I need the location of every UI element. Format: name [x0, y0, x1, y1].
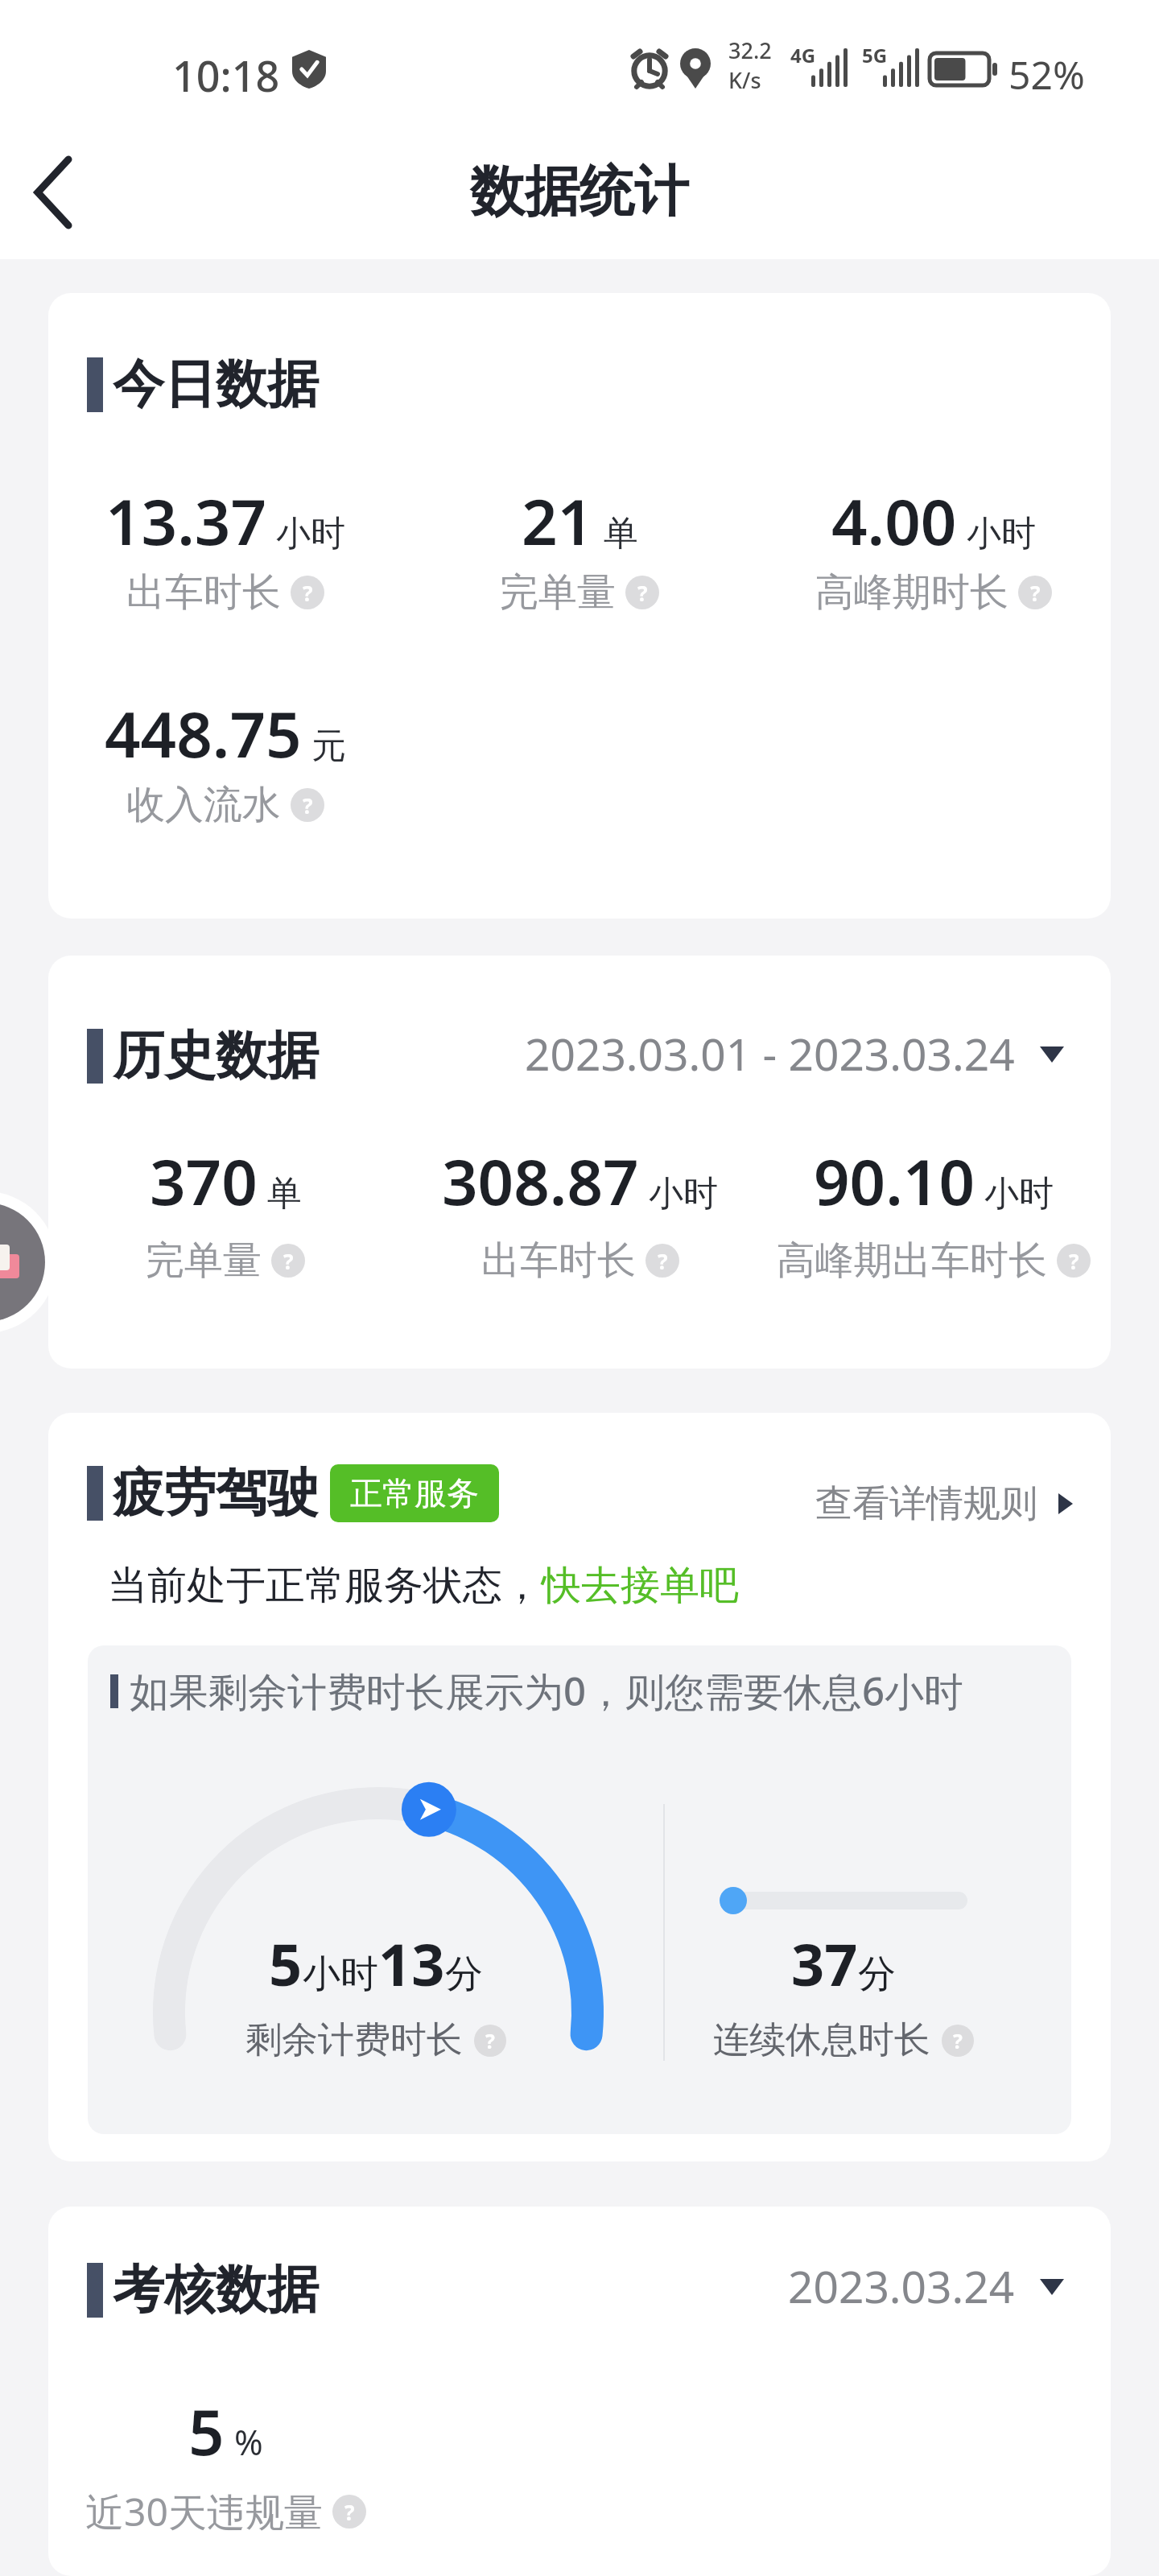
button[interactable]: 2023.03.01 - 2023.03.24: [525, 1023, 1064, 1084]
staticText: 单: [267, 1172, 302, 1216]
staticText: 小时: [303, 1951, 378, 1998]
staticText: 小时: [276, 512, 345, 555]
staticText: 小时: [967, 512, 1036, 555]
staticText: 4G: [790, 42, 816, 68]
staticText: 数据统计: [470, 158, 689, 227]
staticText: 308.87: [442, 1138, 639, 1224]
button[interactable]: 查看详情规则: [815, 1480, 1073, 1527]
staticText: ?: [658, 1247, 668, 1275]
staticText: 4.00: [831, 478, 957, 563]
staticText: 高峰期出车时长: [777, 1236, 1047, 1285]
staticText: ?: [637, 579, 648, 607]
staticText: 448.75: [105, 691, 302, 776]
staticText: ?: [1069, 1247, 1079, 1275]
staticText: 21: [522, 478, 594, 563]
staticText: 历史数据: [113, 1023, 319, 1088]
staticText: 正常服务: [350, 1473, 479, 1513]
staticText: 元: [311, 724, 346, 768]
staticText: 高峰期时长: [815, 568, 1008, 617]
staticText: 出车时长: [481, 1236, 636, 1285]
staticText: 完单量: [500, 568, 616, 617]
staticText: 今日数据: [113, 352, 319, 417]
staticText: 13: [378, 1924, 445, 2003]
button[interactable]: [0, 1203, 45, 1322]
staticText: 出车时长: [126, 568, 281, 617]
staticText: 90.10: [814, 1138, 975, 1224]
staticText: 收入流水: [126, 781, 281, 829]
staticText: ?: [303, 579, 313, 607]
staticText: 52%: [1008, 48, 1085, 101]
button[interactable]: 2023.03.24: [788, 2256, 1064, 2316]
staticText: ?: [1030, 579, 1041, 607]
staticText: ?: [485, 2027, 495, 2054]
button[interactable]: [35, 159, 68, 225]
staticText: 分: [445, 1951, 483, 1998]
staticText: ?: [283, 1247, 294, 1275]
staticText: 2023.03.24: [788, 2256, 1015, 2316]
staticText: 快去接单吧: [542, 1561, 739, 1611]
staticText: 查看详情规则: [815, 1480, 1037, 1527]
staticText: 完单量: [146, 1236, 262, 1285]
staticText: 连续休息时长: [713, 2017, 930, 2063]
staticText: 单: [604, 512, 638, 555]
staticText: K/s: [728, 65, 761, 95]
staticText: 如果剩余计费时长展示为0，则您需要休息6小时: [130, 1664, 964, 1718]
staticText: 近30天违规量: [85, 2485, 323, 2538]
staticText: 当前处于正常服务状态，: [108, 1561, 542, 1611]
staticText: 5: [188, 2388, 225, 2474]
staticText: 5G: [862, 42, 888, 68]
staticText: 5: [269, 1924, 303, 2003]
staticText: 疲劳驾驶: [113, 1460, 319, 1525]
staticText: 32.2: [728, 35, 772, 65]
staticText: 37: [791, 1924, 858, 2003]
staticText: ?: [953, 2027, 963, 2054]
staticText: ?: [344, 2498, 355, 2526]
button[interactable]: 快去接单吧: [542, 1561, 739, 1611]
staticText: 小时: [649, 1172, 718, 1216]
staticText: ?: [303, 791, 313, 819]
staticText: 分: [858, 1951, 896, 1998]
staticText: 10:18: [172, 47, 280, 104]
staticText: %: [234, 2418, 263, 2466]
staticText: 小时: [984, 1172, 1054, 1216]
staticText: 剩余计费时长: [245, 2017, 463, 2063]
staticText: 13.37: [105, 478, 266, 563]
staticText: 考核数据: [113, 2257, 319, 2322]
staticText: 2023.03.01 - 2023.03.24: [525, 1023, 1015, 1084]
staticText: 370: [150, 1138, 258, 1224]
